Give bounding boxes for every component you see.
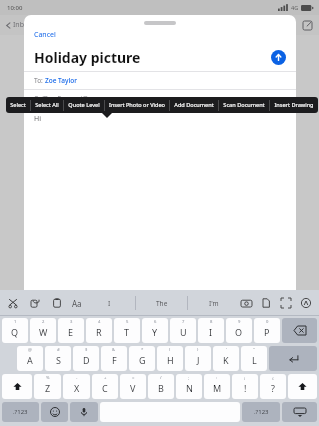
staticText: A: [27, 354, 33, 366]
button[interactable]: Cut: [6, 296, 20, 310]
button[interactable]: Copy: [28, 296, 42, 310]
button[interactable]: ¿: [260, 374, 286, 399]
staticText: C: [102, 382, 108, 394]
button[interactable]: :: [204, 374, 230, 399]
button[interactable]: Aa: [70, 295, 84, 312]
staticText: Insert Drawing: [274, 101, 314, 109]
button[interactable]: Return: [269, 346, 317, 371]
button[interactable]: ': [213, 346, 239, 371]
button[interactable]: 6: [142, 318, 168, 343]
button[interactable]: $: [73, 346, 99, 371]
button[interactable]: @: [17, 346, 43, 371]
staticText: X: [74, 382, 80, 394]
button[interactable]: Compose: [302, 20, 313, 31]
staticText: Quote Level: [68, 101, 100, 109]
staticText: -: [76, 375, 78, 381]
button[interactable]: #: [45, 346, 71, 371]
button[interactable]: Hide keyboard: [282, 402, 317, 422]
button[interactable]: Dictation: [70, 402, 98, 422]
button[interactable]: 5: [114, 318, 140, 343]
button[interactable]: *: [129, 346, 155, 371]
button[interactable]: +: [92, 374, 118, 399]
button[interactable]: ): [185, 346, 211, 371]
button[interactable]: Emoji: [41, 402, 68, 422]
staticText: ¿: [272, 375, 274, 381]
staticText: (: [169, 347, 171, 353]
button[interactable]: Add document: [259, 296, 273, 310]
button[interactable]: 2: [30, 318, 56, 343]
staticText: F: [112, 354, 117, 366]
button[interactable]: Cancel: [24, 27, 56, 43]
button[interactable]: Select: [6, 97, 30, 113]
button[interactable]: .?123: [242, 402, 280, 422]
staticText: =: [132, 375, 135, 381]
staticText: Z: [45, 382, 51, 394]
button[interactable]: (: [157, 346, 183, 371]
staticText: V: [130, 382, 136, 394]
button[interactable]: =: [120, 374, 146, 399]
button[interactable]: Paste: [50, 296, 64, 310]
button[interactable]: The: [136, 290, 187, 316]
button[interactable]: I'm: [188, 290, 239, 316]
button[interactable]: Quote Level: [64, 97, 104, 113]
staticText: ;: [188, 375, 190, 381]
button[interactable]: 4: [86, 318, 112, 343]
button[interactable]: Scan document: [279, 296, 293, 310]
button[interactable]: 8: [198, 318, 224, 343]
button[interactable]: ;: [176, 374, 202, 399]
button[interactable]: Send: [271, 50, 286, 65]
button[interactable]: %: [34, 374, 61, 399]
button[interactable]: Back: [5, 20, 25, 30]
staticText: Aa: [72, 298, 82, 309]
button[interactable]: Insert photo: [239, 296, 253, 310]
button[interactable]: 3: [58, 318, 84, 343]
staticText: D: [83, 354, 90, 366]
staticText: /: [160, 375, 162, 381]
staticText: Insert Photo or Video: [109, 101, 165, 109]
staticText: Cancel: [34, 30, 56, 40]
button[interactable]: 0: [254, 318, 280, 343]
button[interactable]: Shift: [2, 374, 32, 399]
button[interactable]: Add Document: [170, 97, 218, 113]
button[interactable]: Cc/Bcc, From: aj@: [24, 90, 296, 107]
button[interactable]: Backspace: [282, 318, 317, 343]
staticText: U: [180, 326, 187, 338]
staticText: :: [216, 375, 218, 381]
button[interactable]: 9: [226, 318, 252, 343]
button[interactable]: Select All: [31, 97, 63, 113]
staticText: Q: [11, 326, 19, 338]
button[interactable]: I: [84, 290, 135, 316]
staticText: 1: [14, 319, 17, 325]
staticText: Scan Document: [223, 101, 265, 109]
button[interactable]: .?123: [2, 402, 39, 422]
staticText: J: [197, 354, 200, 366]
button[interactable]: -: [63, 374, 90, 399]
button[interactable]: Scan Document: [219, 97, 269, 113]
staticText: R: [96, 326, 102, 338]
staticText: ): [197, 347, 199, 353]
staticText: Add Document: [174, 101, 214, 109]
button[interactable]: /: [148, 374, 174, 399]
button[interactable]: To:: [24, 72, 296, 89]
button[interactable]: Insert Drawing: [270, 97, 318, 113]
staticText: 8: [210, 319, 213, 325]
button[interactable]: &: [101, 346, 127, 371]
staticText: *: [141, 347, 144, 353]
staticText: %: [46, 375, 50, 381]
staticText: Hi: [34, 114, 41, 124]
button[interactable]: 7: [170, 318, 196, 343]
button[interactable]: 1: [2, 318, 28, 343]
button[interactable]: Markup: [299, 296, 313, 310]
button[interactable]: ": [241, 346, 267, 371]
button[interactable]: Insert Photo or Video: [105, 97, 169, 113]
staticText: .?123: [254, 408, 269, 416]
staticText: I: [209, 326, 213, 338]
button[interactable]: Shift: [288, 374, 317, 399]
staticText: G: [139, 354, 146, 366]
button[interactable]: ¡: [232, 374, 258, 399]
staticText: L: [252, 354, 257, 366]
staticText: Holiday picture: [34, 48, 271, 67]
